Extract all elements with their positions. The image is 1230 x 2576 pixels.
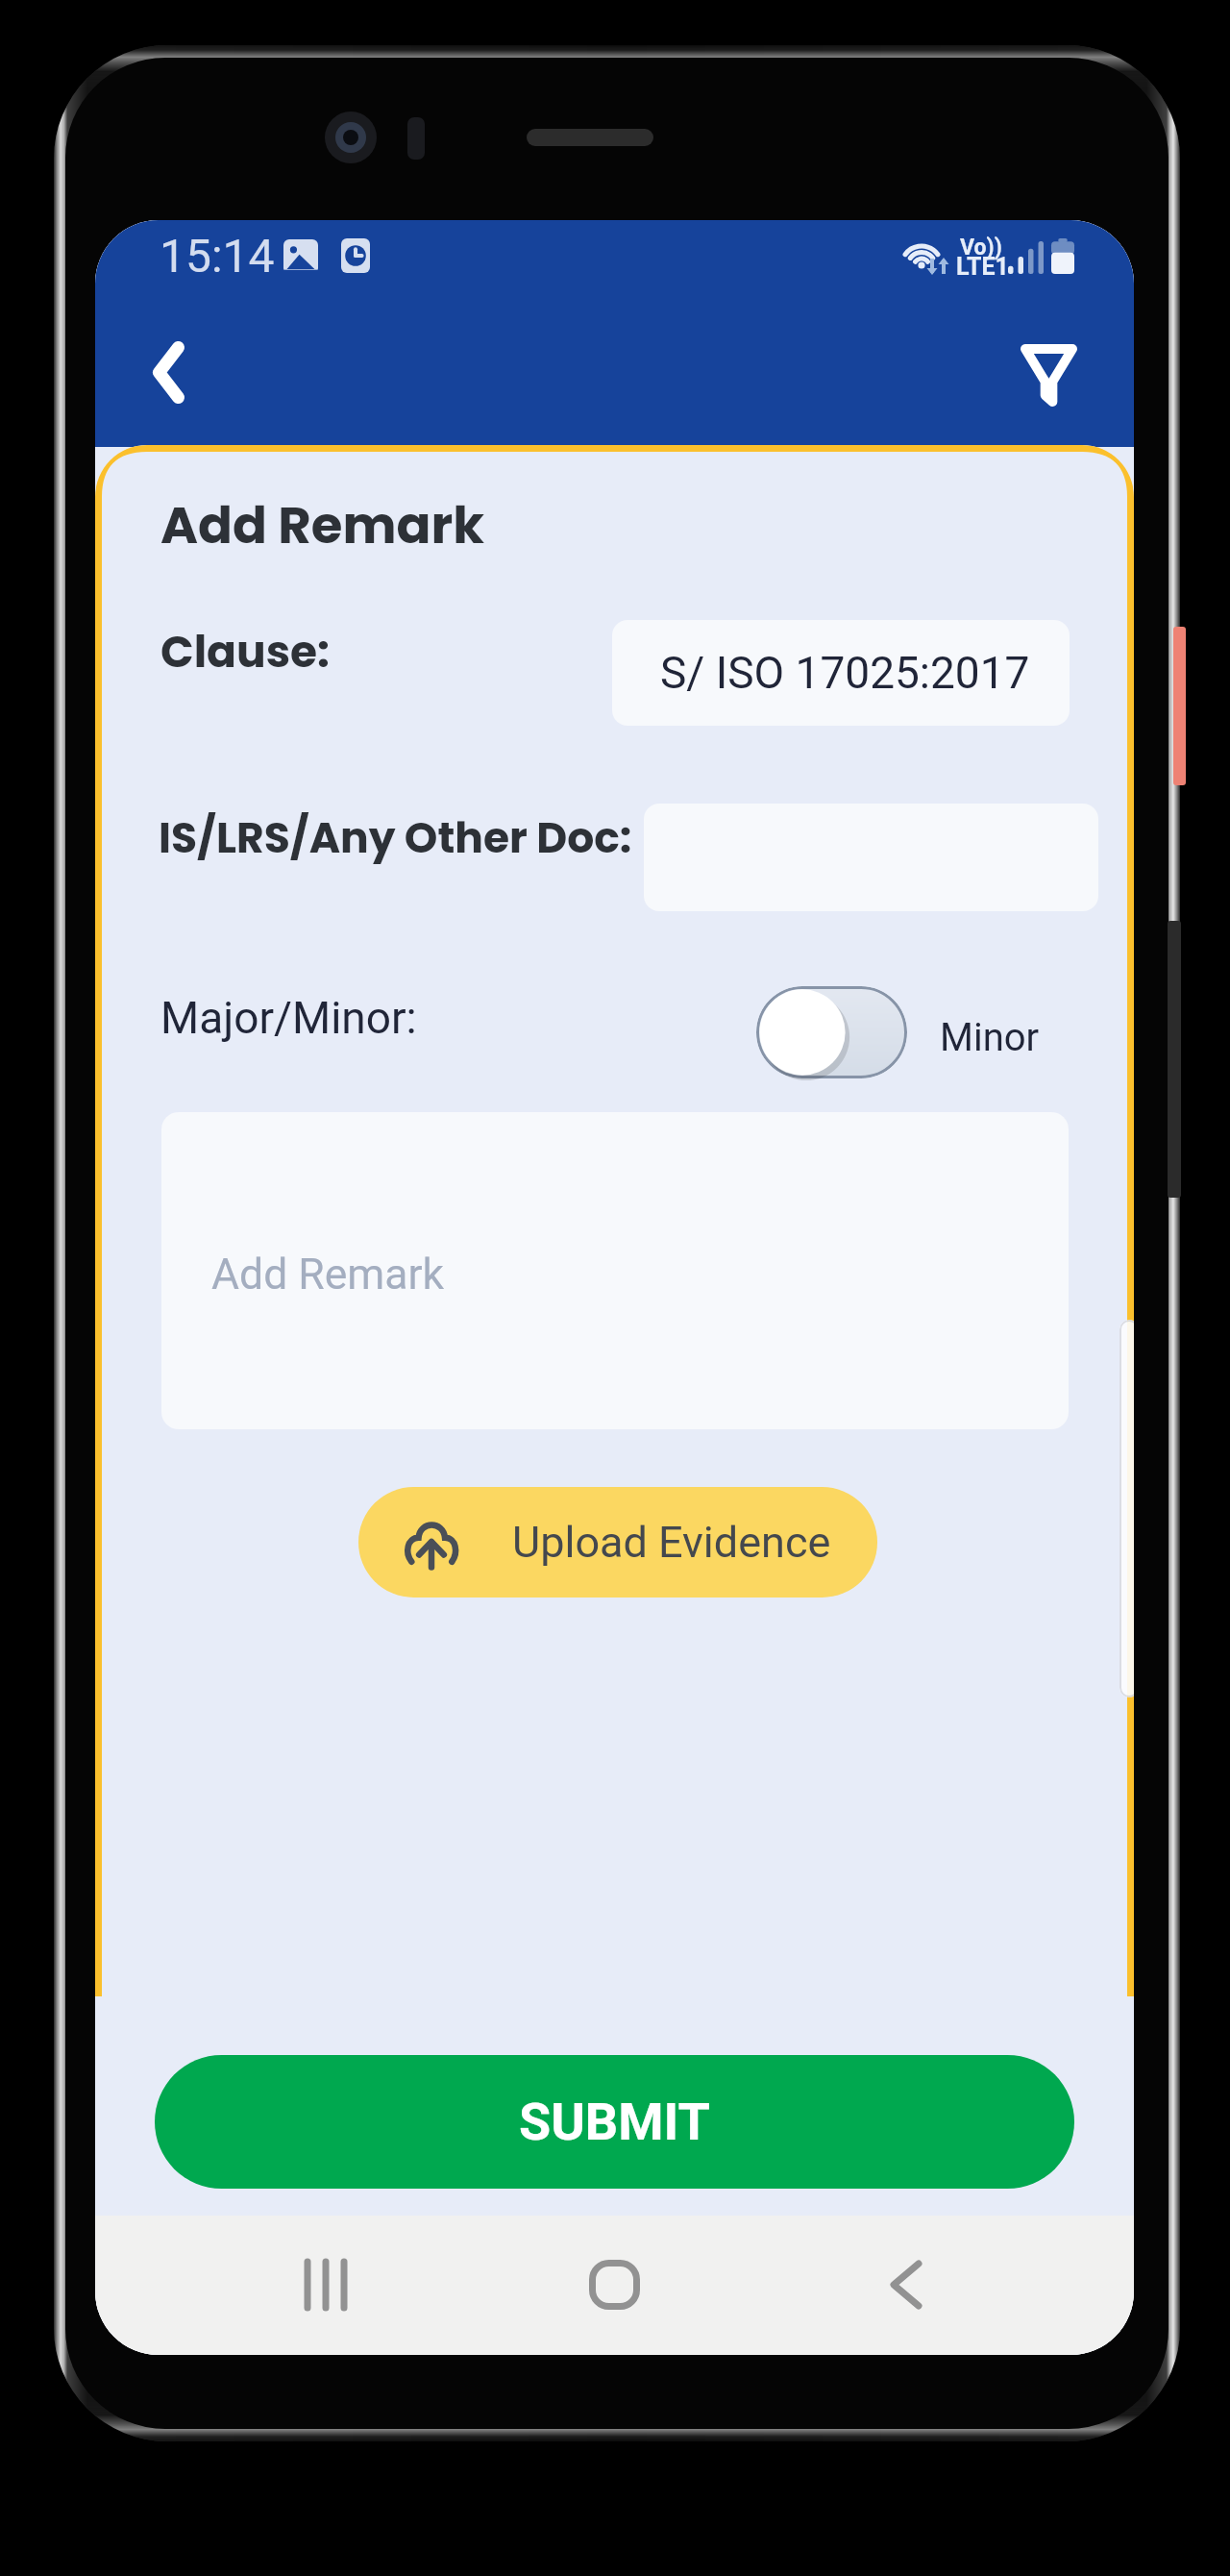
staticText: Upload Evidence: [512, 1517, 831, 1568]
button[interactable]: Home: [554, 2225, 674, 2344]
button[interactable]: Navigate back: [111, 314, 226, 430]
staticText: SUBMIT: [519, 2092, 710, 2152]
staticText: Add Remark: [211, 1250, 445, 1300]
staticText: Vo)): [960, 235, 1002, 260]
button[interactable]: Filter: [991, 317, 1106, 433]
staticText: LTE1: [956, 253, 1009, 281]
staticText: Clause:: [160, 621, 330, 682]
staticText: Major/Minor:: [160, 992, 417, 1044]
button[interactable]: Back: [847, 2225, 966, 2344]
button[interactable]: [756, 986, 907, 1078]
button[interactable]: Add Remark: [161, 1112, 1069, 1429]
staticText: Add Remark: [160, 489, 485, 560]
button[interactable]: Upload Evidence: [358, 1487, 877, 1598]
button[interactable]: SUBMIT: [155, 2055, 1074, 2189]
staticText: IS/LRS/Any Other Doc:: [159, 808, 632, 868]
staticText: 15:14: [160, 229, 275, 283]
staticText: Minor: [940, 1015, 1040, 1060]
button[interactable]: Recent apps: [266, 2225, 385, 2344]
button[interactable]: S/ ISO 17025:2017: [612, 620, 1070, 726]
staticText: S/ ISO 17025:2017: [660, 647, 1030, 699]
